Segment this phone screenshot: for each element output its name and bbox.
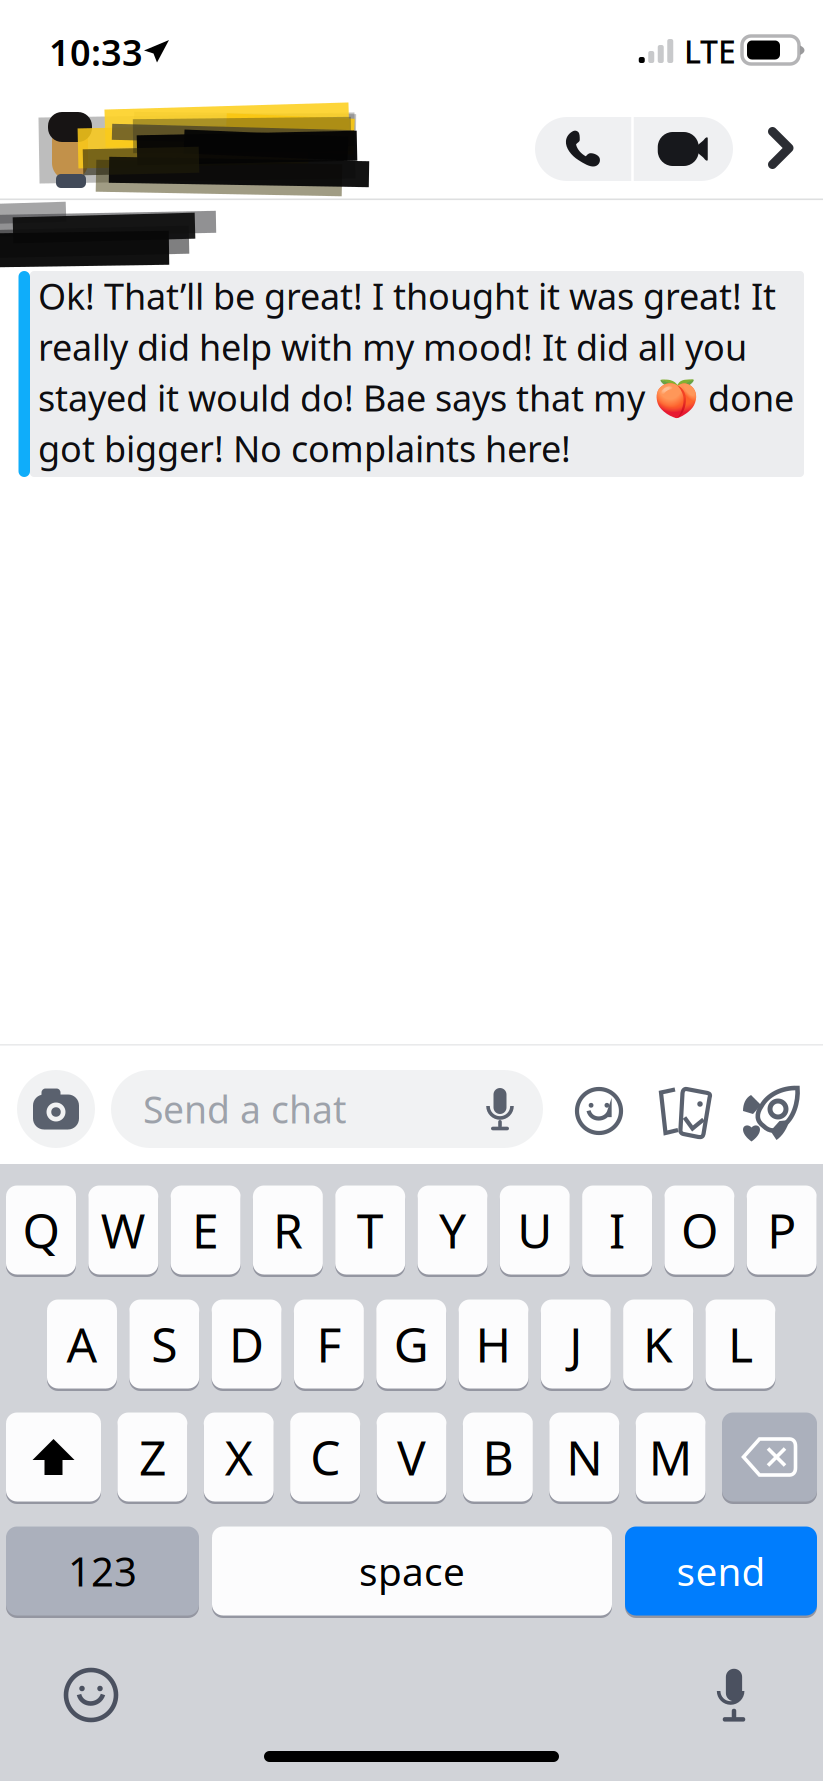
staticText: M (649, 1425, 693, 1489)
button[interactable]: Voice call (535, 117, 631, 181)
button[interactable]: S (129, 1298, 199, 1390)
staticText: space (359, 1545, 465, 1597)
staticText: 10:33 (49, 28, 143, 76)
button[interactable]: C (290, 1411, 360, 1503)
staticText: F (316, 1312, 341, 1376)
button[interactable]: Shift (6, 1411, 101, 1503)
button[interactable]: Y (417, 1184, 487, 1276)
staticText: O (681, 1198, 718, 1262)
button[interactable]: P (747, 1184, 817, 1276)
button[interactable]: N (549, 1411, 619, 1503)
button[interactable]: W (88, 1184, 158, 1276)
button[interactable]: I (582, 1184, 652, 1276)
staticText: H (475, 1312, 511, 1376)
staticText: Send a chat (143, 1084, 346, 1134)
button[interactable]: E (171, 1184, 241, 1276)
button[interactable]: Stickers (656, 1084, 714, 1140)
button[interactable]: R (253, 1184, 323, 1276)
button[interactable]: G (376, 1298, 446, 1390)
staticText: Z (139, 1425, 166, 1489)
staticText: X (225, 1425, 253, 1489)
staticText: N (566, 1425, 602, 1489)
staticText: J (569, 1312, 582, 1376)
staticText: K (643, 1312, 673, 1376)
staticText: D (229, 1312, 264, 1376)
button[interactable]: 123 (6, 1525, 199, 1617)
button[interactable]: Q (6, 1184, 76, 1276)
button[interactable]: T (335, 1184, 405, 1276)
staticText: W (101, 1198, 146, 1262)
staticText: really did help with my mood! It did all… (38, 323, 747, 371)
button[interactable]: More options (750, 120, 812, 176)
staticText: send (676, 1545, 765, 1597)
button[interactable]: send (625, 1525, 817, 1617)
staticText: stayed it would do! Bae says that my 🍑 d… (38, 374, 794, 421)
button[interactable]: Open camera (17, 1070, 95, 1148)
button[interactable]: Delete (722, 1411, 817, 1503)
button[interactable]: M (636, 1411, 706, 1503)
staticText: C (310, 1425, 340, 1489)
staticText: got bigger! No complaints here! (38, 424, 571, 472)
button[interactable]: H (458, 1298, 528, 1390)
button[interactable]: Send a chat (111, 1070, 543, 1148)
button[interactable]: Video call (634, 117, 733, 181)
button[interactable]: Emoji (575, 1087, 623, 1135)
button[interactable]: O (664, 1184, 734, 1276)
button[interactable]: K (623, 1298, 693, 1390)
button[interactable]: J (541, 1298, 611, 1390)
button[interactable]: D (212, 1298, 282, 1390)
staticText: Y (439, 1198, 466, 1262)
button[interactable]: Emoji keyboard (64, 1668, 118, 1722)
staticText: LTE (684, 30, 736, 72)
button[interactable]: Dictation (715, 1667, 753, 1722)
staticText: U (517, 1198, 552, 1262)
button[interactable]: L (705, 1298, 775, 1390)
staticText: L (728, 1312, 753, 1376)
button[interactable]: V (376, 1411, 446, 1503)
button[interactable]: X (204, 1411, 274, 1503)
staticText: E (192, 1198, 219, 1262)
staticText: P (767, 1198, 796, 1262)
button[interactable]: Z (117, 1411, 187, 1503)
staticText: Ok! That’ll be great! I thought it was g… (38, 272, 776, 320)
staticText: A (66, 1312, 97, 1376)
button[interactable]: B (463, 1411, 533, 1503)
button[interactable]: U (500, 1184, 570, 1276)
button[interactable]: F (294, 1298, 364, 1390)
staticText: I (609, 1198, 625, 1262)
staticText: S (151, 1312, 177, 1376)
staticText: G (394, 1312, 429, 1376)
button[interactable]: A (47, 1298, 117, 1390)
staticText: R (273, 1198, 303, 1262)
button[interactable]: Send to (743, 1083, 801, 1141)
staticText: V (397, 1425, 426, 1489)
button[interactable]: space (212, 1525, 612, 1617)
staticText: B (482, 1425, 513, 1489)
staticText: Q (22, 1198, 59, 1262)
staticText: T (357, 1198, 384, 1262)
staticText: 123 (68, 1544, 137, 1597)
